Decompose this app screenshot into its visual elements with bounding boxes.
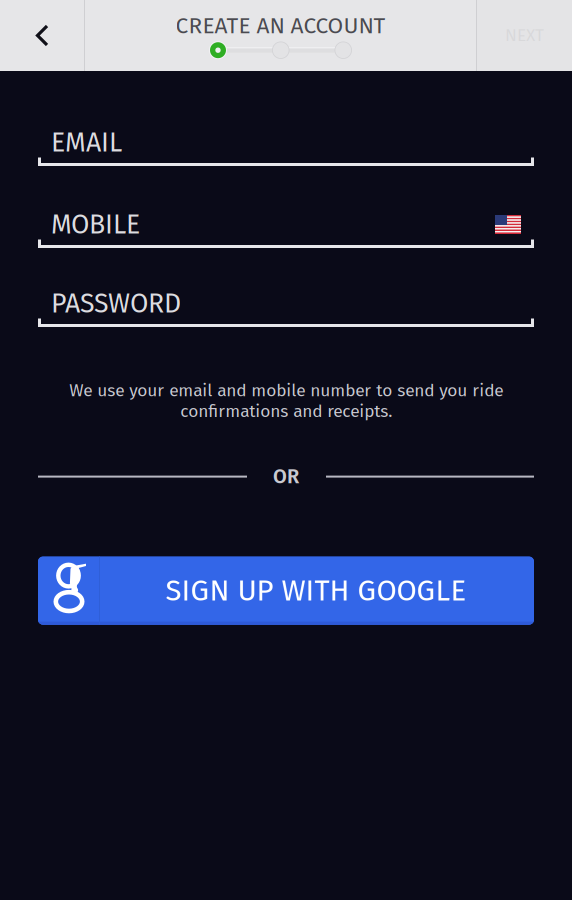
- staticText: NEXT: [505, 25, 544, 46]
- button[interactable]: EMAIL: [38, 120, 534, 165]
- button[interactable]: Back: [0, 0, 84, 71]
- staticText: PASSWORD: [51, 287, 181, 319]
- button[interactable]: PASSWORD: [38, 281, 534, 326]
- staticText: OR: [273, 465, 299, 489]
- button[interactable]: SIGN UP WITH GOOGLE: [38, 557, 534, 625]
- staticText: We use your email and mobile number to s…: [69, 380, 503, 422]
- staticText: EMAIL: [51, 126, 122, 158]
- staticText: MOBILE: [51, 208, 140, 240]
- button[interactable]: MOBILE: [38, 202, 534, 247]
- staticText: CREATE AN ACCOUNT: [175, 12, 385, 39]
- staticText: SIGN UP WITH GOOGLE: [165, 573, 466, 608]
